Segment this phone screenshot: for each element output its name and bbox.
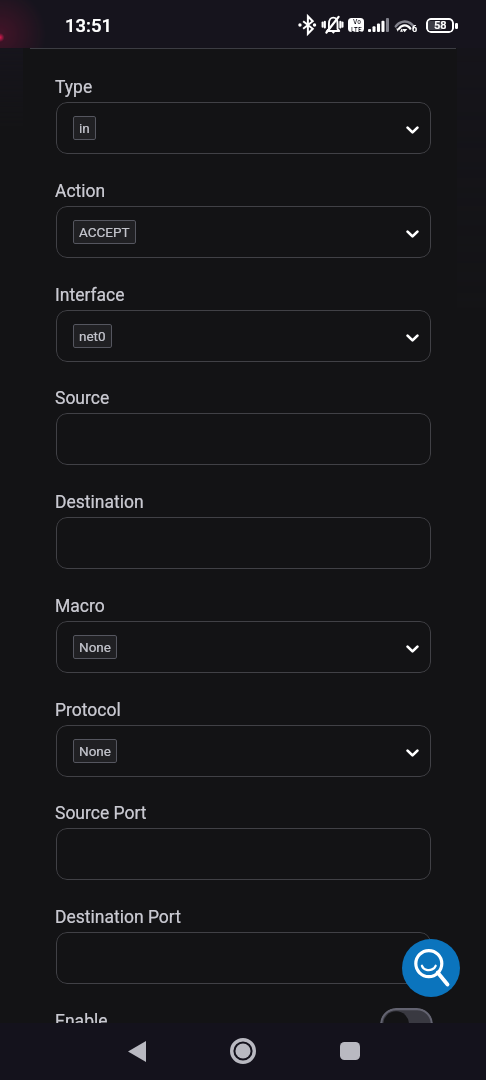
staticText: Source Port xyxy=(55,803,147,824)
staticText: LTE xyxy=(351,26,362,32)
staticText: Enable xyxy=(55,1011,108,1023)
staticText: 58 xyxy=(434,19,447,32)
button[interactable]: None xyxy=(56,621,431,673)
staticText: Vo xyxy=(353,18,361,26)
staticText: ACCEPT xyxy=(79,224,130,240)
staticText: None xyxy=(79,639,111,655)
staticText: Action xyxy=(55,181,106,202)
button[interactable] xyxy=(56,932,431,984)
button[interactable]: Enable xyxy=(380,1008,433,1023)
button[interactable]: Back xyxy=(113,1027,161,1075)
staticText: Destination Port xyxy=(55,907,181,928)
staticText: 13:51 xyxy=(65,15,112,37)
button[interactable] xyxy=(56,413,431,465)
button[interactable]: net0 xyxy=(56,310,431,362)
button[interactable]: ACCEPT xyxy=(56,206,431,258)
staticText: Macro xyxy=(55,596,105,617)
staticText: Protocol xyxy=(55,700,121,721)
button[interactable]: in xyxy=(56,102,431,154)
button[interactable]: Home xyxy=(219,1027,267,1075)
button[interactable]: Recent apps xyxy=(326,1027,374,1075)
button[interactable] xyxy=(56,828,431,880)
staticText: None xyxy=(79,743,111,759)
staticText: 6 xyxy=(412,24,418,35)
button[interactable]: Search xyxy=(402,939,460,997)
staticText: Type xyxy=(55,77,93,98)
staticText: net0 xyxy=(79,328,106,344)
staticText: in xyxy=(79,120,90,136)
staticText: Destination xyxy=(55,492,144,513)
staticText: Interface xyxy=(55,285,125,306)
button[interactable] xyxy=(56,517,431,569)
button[interactable]: None xyxy=(56,725,431,777)
staticText: Source xyxy=(55,388,110,409)
